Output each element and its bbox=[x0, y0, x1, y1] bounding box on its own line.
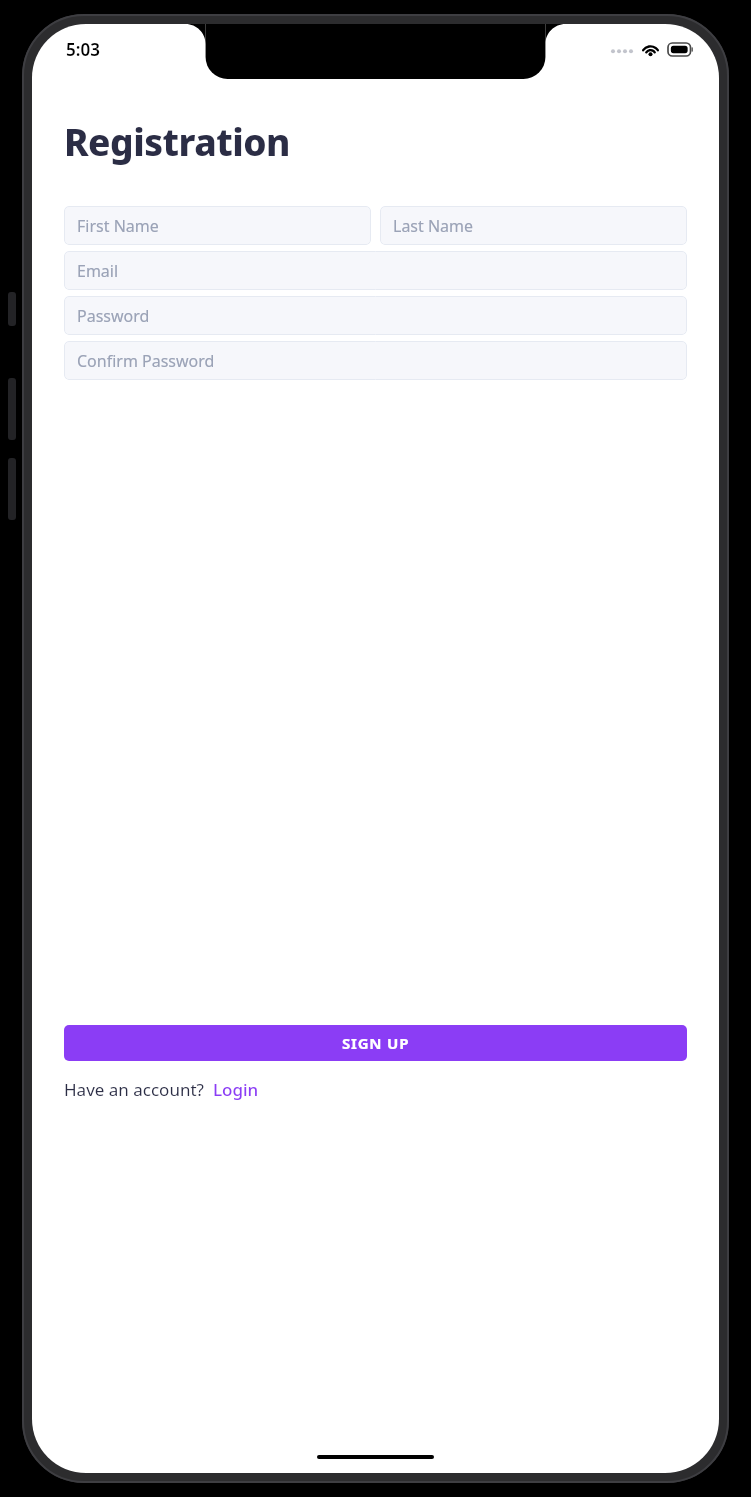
button[interactable]: SIGN UP bbox=[64, 1025, 687, 1061]
button[interactable]: Email bbox=[64, 251, 687, 290]
button[interactable]: Login bbox=[213, 1078, 259, 1101]
button[interactable]: Confirm Password bbox=[64, 341, 687, 380]
staticText: Registration bbox=[64, 116, 290, 166]
staticText: 5:03 bbox=[66, 38, 100, 61]
staticText: First Name bbox=[77, 215, 159, 237]
staticText: Last Name bbox=[393, 215, 474, 237]
staticText: SIGN UP bbox=[342, 1033, 410, 1053]
button[interactable]: First Name bbox=[64, 206, 371, 245]
button[interactable]: Last Name bbox=[380, 206, 687, 245]
staticText: Have an account? bbox=[64, 1078, 204, 1101]
staticText: Confirm Password bbox=[77, 350, 215, 372]
staticText: Password bbox=[77, 305, 150, 327]
staticText: Email bbox=[77, 260, 119, 282]
button[interactable]: Password bbox=[64, 296, 687, 335]
staticText: Login bbox=[213, 1078, 259, 1101]
